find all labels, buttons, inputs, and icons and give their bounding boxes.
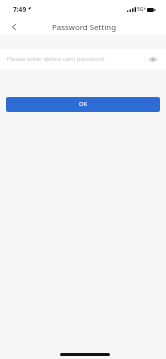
button[interactable]: Show password: [147, 54, 158, 65]
staticText: Password Setting: [52, 22, 116, 33]
staticText: OK: [79, 100, 88, 108]
button[interactable]: OK: [6, 97, 160, 112]
staticText: 7:49: [13, 5, 27, 14]
staticText: 5G+: [137, 6, 146, 13]
button[interactable]: Back: [6, 19, 22, 35]
staticText: Please enter device card password.: [7, 54, 106, 62]
